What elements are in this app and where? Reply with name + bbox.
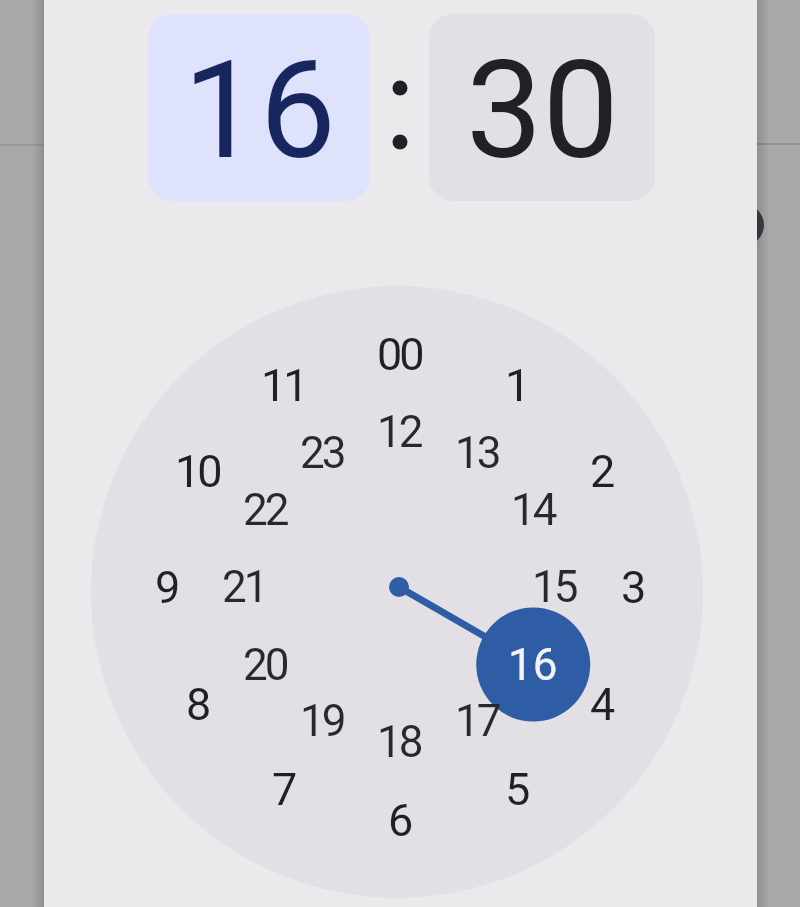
staticText: 17	[455, 695, 499, 747]
staticText: 18	[377, 716, 421, 768]
staticText: 2	[590, 445, 613, 498]
staticText: 16	[183, 31, 336, 190]
staticText: 19	[300, 695, 344, 747]
staticText: 11	[261, 359, 306, 412]
staticText: 6	[388, 794, 411, 847]
staticText: 1	[505, 359, 528, 412]
staticText: 4	[590, 678, 613, 731]
staticText: 22	[243, 484, 287, 536]
staticText: 7	[272, 763, 295, 816]
staticText: 00	[377, 328, 422, 381]
staticText: 9	[155, 561, 178, 614]
staticText: 15	[532, 561, 576, 613]
staticText: 14	[511, 484, 555, 536]
staticText: 20	[243, 639, 287, 691]
staticText: 13	[455, 427, 499, 479]
staticText: 23	[300, 427, 344, 479]
staticText: 8	[186, 678, 209, 731]
staticText: 21	[222, 561, 266, 613]
staticText: 10	[175, 445, 220, 498]
staticText: 16	[508, 639, 558, 691]
staticText: 5	[505, 763, 528, 816]
staticText: 30	[466, 31, 619, 190]
staticText: 3	[621, 561, 644, 614]
staticText: 12	[377, 406, 421, 458]
